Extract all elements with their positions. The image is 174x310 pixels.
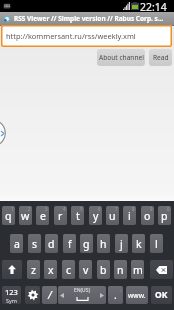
button[interactable]: c — [62, 260, 75, 279]
button[interactable]: t — [71, 206, 84, 225]
staticText: 5 — [80, 206, 83, 212]
staticText: u — [109, 209, 116, 223]
staticText: g — [83, 237, 90, 251]
button[interactable]: . — [108, 286, 123, 304]
button[interactable]: e — [36, 206, 49, 225]
button[interactable]: Space — [58, 286, 106, 304]
staticText: 0 — [167, 206, 170, 212]
staticText: l — [155, 237, 158, 251]
button[interactable]: x — [44, 260, 57, 279]
staticText: w — [21, 209, 30, 223]
button[interactable]: o — [141, 206, 154, 225]
staticText: 8 — [132, 206, 135, 212]
staticText: EN(US) — [74, 287, 90, 294]
staticText: 1 — [11, 206, 14, 212]
staticText: f — [68, 237, 72, 251]
staticText: 4 — [63, 206, 66, 212]
staticText: z — [31, 263, 36, 277]
staticText: 3 — [45, 206, 48, 212]
staticText: 2 — [28, 206, 31, 212]
staticText: Sym — [6, 297, 17, 304]
staticText: d — [48, 237, 55, 251]
staticText: About channel — [99, 53, 144, 62]
staticText: e — [40, 209, 46, 223]
button[interactable]: i — [123, 206, 136, 225]
staticText: o — [144, 209, 151, 223]
staticText: r — [58, 209, 63, 223]
staticText: OK — [155, 289, 168, 301]
staticText: s — [32, 237, 38, 251]
staticText: . — [114, 288, 117, 302]
button[interactable]: v — [79, 260, 92, 279]
staticText: 22:14 — [140, 0, 167, 12]
staticText: www. — [128, 291, 146, 300]
staticText: 7 — [115, 206, 118, 212]
button[interactable]: p — [158, 206, 171, 225]
button[interactable]: b — [97, 260, 110, 279]
staticText: c — [66, 263, 72, 277]
button[interactable]: Read — [149, 49, 172, 66]
staticText: i — [128, 209, 131, 223]
staticText: 6 — [98, 206, 101, 212]
button[interactable]: n — [114, 260, 127, 279]
button[interactable]: a — [10, 234, 23, 253]
staticText: a — [14, 237, 20, 251]
staticText: / — [48, 288, 52, 302]
button[interactable]: / — [42, 286, 57, 304]
button[interactable]: z — [27, 260, 40, 279]
staticText: y — [93, 209, 99, 223]
button[interactable]: Open panel — [0, 119, 6, 147]
button[interactable]: q — [2, 206, 15, 225]
button[interactable]: m — [131, 260, 144, 279]
staticText: Read — [153, 53, 169, 62]
button[interactable]: h — [97, 234, 110, 253]
button[interactable]: www. — [126, 286, 148, 304]
staticText: b — [100, 263, 107, 277]
staticText: j — [120, 237, 123, 251]
button[interactable]: g — [80, 234, 93, 253]
staticText: h — [100, 237, 107, 251]
staticText: t — [76, 209, 80, 223]
staticText: m — [133, 263, 143, 277]
button[interactable]: y — [89, 206, 102, 225]
staticText: n — [117, 263, 124, 277]
button[interactable]: About channel — [97, 49, 145, 66]
staticText: p — [161, 209, 168, 223]
staticText: x — [48, 263, 54, 277]
staticText: k — [136, 237, 142, 251]
button[interactable]: Symbols — [2, 286, 21, 304]
staticText: 123 — [5, 287, 18, 297]
button[interactable]: k — [132, 234, 145, 253]
button[interactable]: j — [115, 234, 128, 253]
button[interactable]: w — [19, 206, 32, 225]
button[interactable]: http://kommersant.ru/rss/weekly.xml — [1, 25, 172, 47]
button[interactable]: Shift — [2, 260, 22, 279]
button[interactable]: r — [54, 206, 67, 225]
button[interactable]: d — [45, 234, 58, 253]
button[interactable]: OK — [151, 286, 172, 304]
button[interactable]: Backspace — [150, 260, 173, 279]
button[interactable]: s — [28, 234, 41, 253]
staticText: v — [83, 263, 89, 277]
staticText: , — [120, 286, 122, 292]
button[interactable]: f — [63, 234, 76, 253]
staticText: http://kommersant.ru/rss/weekly.xml — [6, 31, 136, 41]
staticText: RSS Viewer // Simple version // Rabus Co… — [14, 14, 164, 23]
button[interactable]: l — [150, 234, 163, 253]
button[interactable]: u — [106, 206, 119, 225]
staticText: q — [5, 209, 12, 223]
button[interactable]: Settings — [25, 286, 40, 304]
staticText: 9 — [150, 206, 153, 212]
